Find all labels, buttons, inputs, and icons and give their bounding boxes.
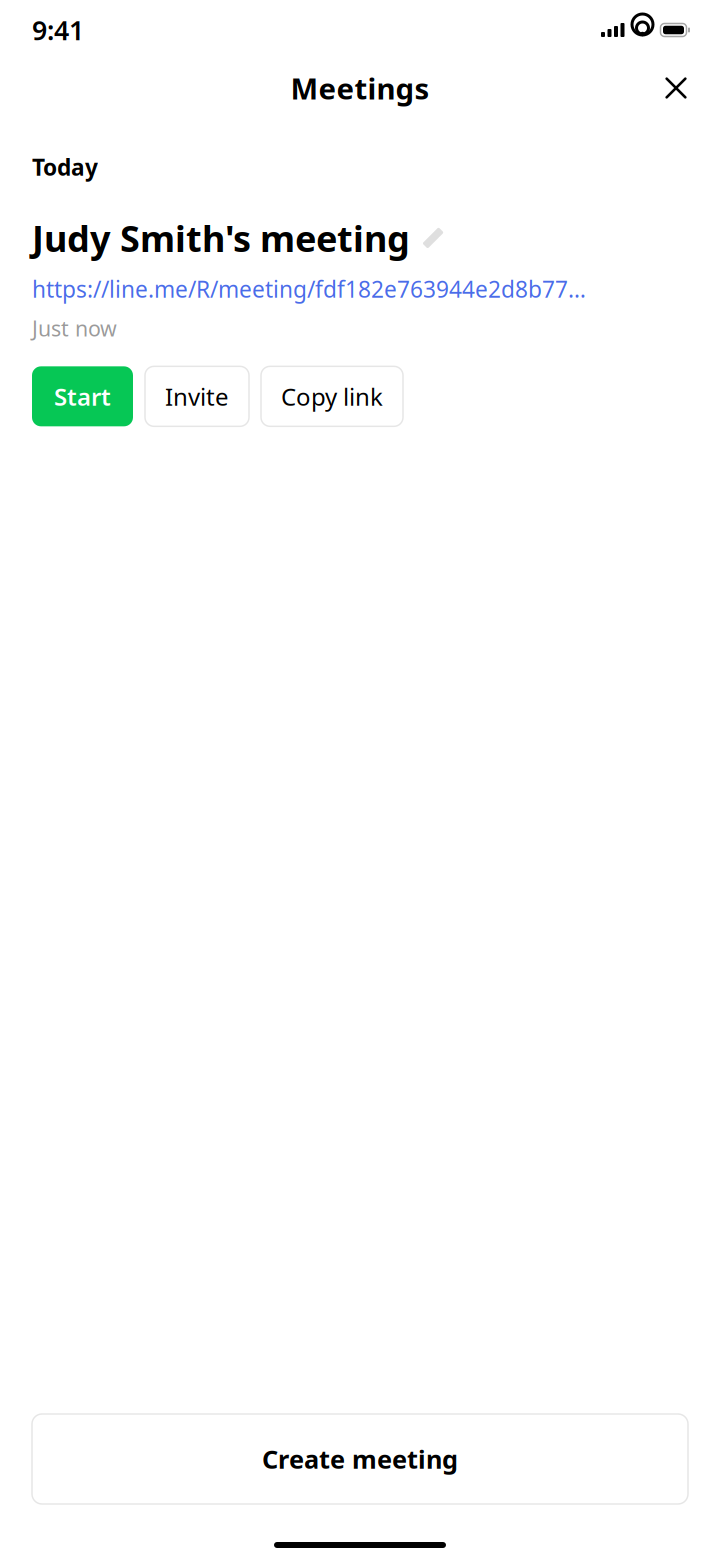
staticText: Start bbox=[54, 380, 111, 412]
staticText: Today bbox=[32, 152, 98, 182]
staticText: 9:41 bbox=[32, 12, 84, 48]
staticText: Invite bbox=[165, 380, 229, 412]
button[interactable]: Invite bbox=[145, 366, 249, 426]
staticText: Create meeting bbox=[262, 1442, 458, 1476]
button[interactable]: Edit meeting name bbox=[420, 225, 446, 251]
staticText: Just now bbox=[32, 314, 117, 342]
staticText: https://line.me/R/meeting/fdf182e763944e… bbox=[32, 274, 586, 304]
staticText: Judy Smith's meeting bbox=[32, 214, 410, 262]
button[interactable]: Close bbox=[652, 64, 700, 112]
button[interactable]: https://line.me/R/meeting/fdf182e763944e… bbox=[0, 274, 610, 304]
staticText: Meetings bbox=[290, 68, 429, 107]
staticText: Copy link bbox=[281, 380, 383, 412]
button[interactable]: Start bbox=[32, 366, 133, 426]
button[interactable]: Copy link bbox=[261, 366, 403, 426]
button[interactable]: Create meeting bbox=[32, 1414, 688, 1504]
